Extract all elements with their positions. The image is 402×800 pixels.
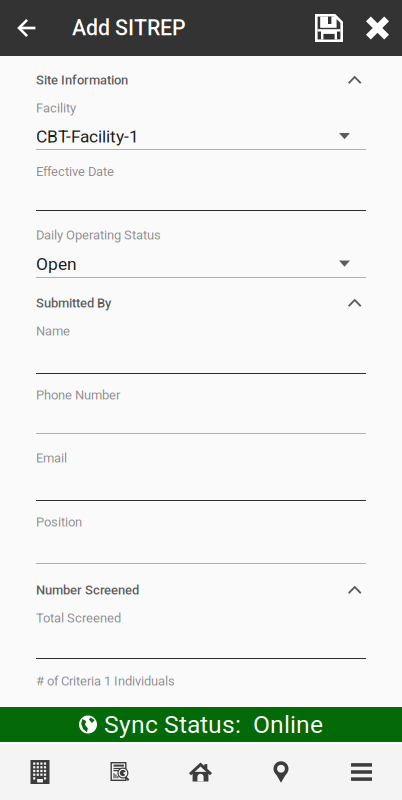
button[interactable]: CBT-Facility-1 [36,123,366,149]
staticText: Effective Date [36,164,114,179]
staticText: CBT-Facility-1 [36,126,139,147]
button[interactable]: Submitted By [36,288,366,318]
staticText: Phone Number [36,387,120,403]
button[interactable]: Home [160,744,241,800]
button[interactable]: Map [241,744,321,800]
button[interactable]: Menu [321,744,402,800]
button[interactable]: Number Screened [36,575,366,605]
button[interactable]: Save [305,0,353,56]
staticText: Add SITREP [72,15,186,40]
staticText: Sync Status: Online [104,710,323,739]
button[interactable]: Site Information [36,65,366,95]
staticText: Number Screened [36,582,139,598]
staticText: Position [36,514,82,530]
button[interactable]: Close [353,0,402,56]
button[interactable]: Facilities [0,744,80,800]
staticText: Facility [36,100,76,116]
staticText: Open [36,254,77,274]
button[interactable]: Back [0,0,54,56]
staticText: Daily Operating Status [36,227,161,243]
staticText: Total Screened [36,610,121,626]
staticText: Submitted By [36,295,111,311]
staticText: Site Information [36,72,128,88]
staticText: Name [36,323,70,339]
button[interactable]: Reports [80,744,160,800]
button[interactable]: Open [36,251,366,277]
staticText: Email [36,450,67,466]
staticText: # of Criteria 1 Individuals [36,673,175,689]
